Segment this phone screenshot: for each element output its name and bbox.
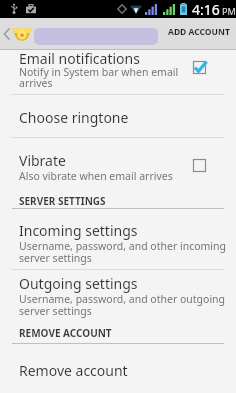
staticText: Username, password, and other outgoing xyxy=(19,292,226,306)
button[interactable] xyxy=(0,209,236,269)
staticText: Notify in System bar when email xyxy=(19,65,179,79)
staticText: REMOVE ACCOUNT xyxy=(19,326,112,340)
staticText: Remove account xyxy=(19,361,128,380)
staticText: server settings xyxy=(19,251,92,265)
staticText: Also vibrate when email arrives xyxy=(19,169,173,183)
staticText: arrives xyxy=(19,76,53,90)
staticText: Choose ringtone xyxy=(19,108,129,127)
button[interactable] xyxy=(0,138,236,186)
staticText: server settings xyxy=(19,304,92,318)
staticText: Username, password, and other incoming xyxy=(19,239,227,253)
button[interactable] xyxy=(0,270,236,322)
button[interactable]: Navigate up xyxy=(0,18,32,50)
staticText: 4:16 xyxy=(192,0,220,18)
button[interactable] xyxy=(0,95,236,137)
staticText: Email notifications xyxy=(19,49,140,68)
button[interactable] xyxy=(0,344,236,393)
staticText: PM xyxy=(222,5,236,17)
button[interactable]: Unchecked xyxy=(187,153,212,178)
staticText: ADD ACCOUNT xyxy=(168,26,230,38)
button[interactable] xyxy=(0,47,236,94)
button[interactable]: ADD ACCOUNT xyxy=(160,18,236,50)
staticText: Outgoing settings xyxy=(19,274,138,293)
staticText: Vibrate xyxy=(19,151,66,170)
staticText: Incoming settings xyxy=(19,221,138,240)
button[interactable]: Checked xyxy=(187,55,212,80)
staticText: SERVER SETTINGS xyxy=(19,194,106,208)
